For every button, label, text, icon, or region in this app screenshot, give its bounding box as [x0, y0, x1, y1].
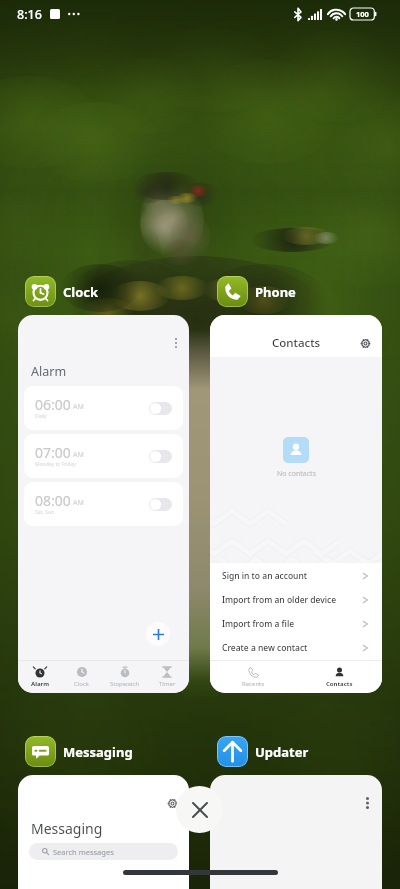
staticText: Timer	[159, 680, 176, 688]
button[interactable]: Settings	[356, 334, 374, 352]
button[interactable]: More options	[166, 333, 186, 353]
button[interactable]: Add alarm	[146, 622, 170, 646]
button[interactable]: Stopwatch	[104, 661, 146, 693]
button[interactable]: Alarm toggle	[149, 498, 172, 511]
button[interactable]: More options	[358, 794, 376, 812]
button[interactable]: Clock	[25, 276, 99, 307]
button[interactable]: 06:00	[24, 386, 183, 430]
button[interactable]: Sign in to an account	[210, 564, 382, 588]
button[interactable]: Alarm	[19, 661, 61, 693]
button[interactable]: Phone	[217, 276, 296, 307]
staticText: 8:16	[17, 6, 42, 23]
staticText: Monday to Friday	[35, 461, 76, 468]
staticText: AM	[73, 498, 84, 508]
staticText: AM	[73, 450, 84, 460]
staticText: Updater	[255, 743, 309, 761]
staticText: Sat, Sun	[35, 509, 54, 516]
staticText: Messaging	[31, 819, 103, 838]
staticText: Phone	[255, 283, 296, 301]
button[interactable]: Contacts	[296, 661, 382, 693]
button[interactable]: Create a new contact	[210, 636, 382, 660]
button[interactable]: More options	[210, 775, 382, 889]
button[interactable]: Import from an older device	[210, 588, 382, 612]
staticText: 08:00	[35, 491, 71, 510]
button[interactable]: Timer	[146, 661, 188, 693]
staticText: Clock	[63, 283, 99, 301]
staticText: Daily	[35, 413, 47, 420]
button[interactable]: Recents	[210, 661, 296, 693]
staticText: Alarm	[31, 363, 67, 380]
staticText: Import from an older device	[222, 594, 337, 606]
button[interactable]: 07:00	[24, 434, 183, 478]
staticText: 06:00	[35, 395, 71, 414]
staticText: AM	[73, 402, 84, 412]
button[interactable]: More options	[18, 315, 189, 693]
button[interactable]: Settings	[163, 794, 181, 812]
button[interactable]: Close all	[176, 786, 223, 833]
staticText: Contacts	[326, 680, 353, 688]
staticText: No contacts	[277, 469, 316, 479]
staticText: Search messages	[53, 847, 114, 857]
staticText: 07:00	[35, 443, 71, 462]
staticText: 100	[356, 9, 369, 19]
staticText: Import from a file	[222, 618, 295, 630]
staticText: Sign in to an account	[222, 570, 307, 582]
button[interactable]: Contacts	[210, 315, 382, 693]
button[interactable]: Alarm toggle	[149, 450, 172, 463]
staticText: Messaging	[63, 743, 133, 761]
button[interactable]: Alarm toggle	[149, 402, 172, 415]
button[interactable]: Import from a file	[210, 612, 382, 636]
button[interactable]: Messaging	[25, 736, 133, 767]
staticText: Clock	[74, 680, 90, 688]
staticText: Alarm	[31, 680, 50, 688]
button[interactable]: 08:00	[24, 482, 183, 526]
button[interactable]: Settings	[18, 775, 189, 889]
button[interactable]: Search messages	[29, 843, 178, 860]
button[interactable]: Updater	[217, 736, 309, 767]
staticText: Contacts	[272, 335, 321, 351]
staticText: Stopwatch	[110, 680, 140, 688]
button[interactable]: Clock	[61, 661, 103, 693]
staticText: Create a new contact	[222, 642, 308, 654]
staticText: Recents	[242, 680, 265, 688]
